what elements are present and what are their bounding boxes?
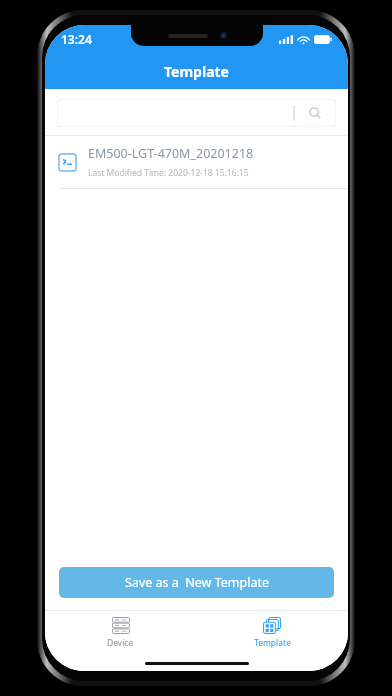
button[interactable]: Save as a New Template — [59, 567, 334, 598]
button[interactable]: Device — [45, 611, 196, 655]
staticText: Template — [254, 637, 291, 649]
button[interactable]: EM500-LGT-470M_20201218 — [45, 135, 348, 189]
staticText: EM500-LGT-470M_20201218 — [88, 145, 254, 162]
staticText: Save as a New Template — [125, 574, 269, 591]
staticText: Last Modified Time: 2020-12-18 15:16:15 — [88, 167, 249, 179]
button[interactable]: Template — [196, 611, 348, 655]
staticText: Template — [164, 62, 229, 81]
staticText: 13:24 — [61, 31, 92, 47]
staticText: Device — [107, 637, 134, 649]
button[interactable] — [57, 99, 336, 127]
